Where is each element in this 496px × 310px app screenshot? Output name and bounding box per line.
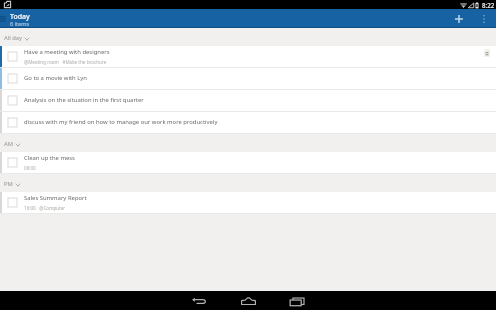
staticText: Sales Summary Report xyxy=(24,194,87,202)
staticText: Clean up the mess xyxy=(24,154,75,162)
button[interactable]: Analysis on the situation in the first q… xyxy=(0,90,496,112)
staticText: All day xyxy=(4,34,22,42)
staticText: PM xyxy=(4,180,13,188)
staticText: Have a meeting with designers xyxy=(24,48,110,56)
button[interactable]: AM xyxy=(4,140,20,148)
button[interactable]: PM xyxy=(4,180,20,188)
button[interactable]: Recent apps xyxy=(279,291,315,310)
button[interactable]: Home xyxy=(230,291,266,310)
staticText: 16:00 @Computer xyxy=(24,205,66,211)
staticText: AM xyxy=(4,140,13,148)
staticText: Today xyxy=(10,12,30,22)
button[interactable]: Sales Summary Report xyxy=(0,192,496,214)
staticText: 6 items xyxy=(10,20,30,28)
button[interactable]: discuss with my friend on how to manage … xyxy=(0,112,496,134)
staticText: 8:22 xyxy=(482,1,495,9)
button[interactable]: Open navigation drawer xyxy=(0,13,9,25)
button[interactable]: Clean up the mess xyxy=(0,152,496,174)
button[interactable]: Back xyxy=(181,291,217,310)
button[interactable]: Go to a movie with Lyn xyxy=(0,68,496,90)
button[interactable]: Add task xyxy=(452,12,466,26)
button[interactable]: All day xyxy=(4,34,29,42)
staticText: Go to a movie with Lyn xyxy=(24,74,87,82)
staticText: 09:00 xyxy=(24,165,36,171)
staticText: Analysis on the situation in the first q… xyxy=(24,96,144,104)
staticText: @Meeting room #Make the brochure xyxy=(24,59,107,65)
button[interactable]: More options xyxy=(478,13,490,25)
button[interactable]: Have a meeting with designers xyxy=(0,46,496,68)
staticText: discuss with my friend on how to manage … xyxy=(24,118,218,126)
